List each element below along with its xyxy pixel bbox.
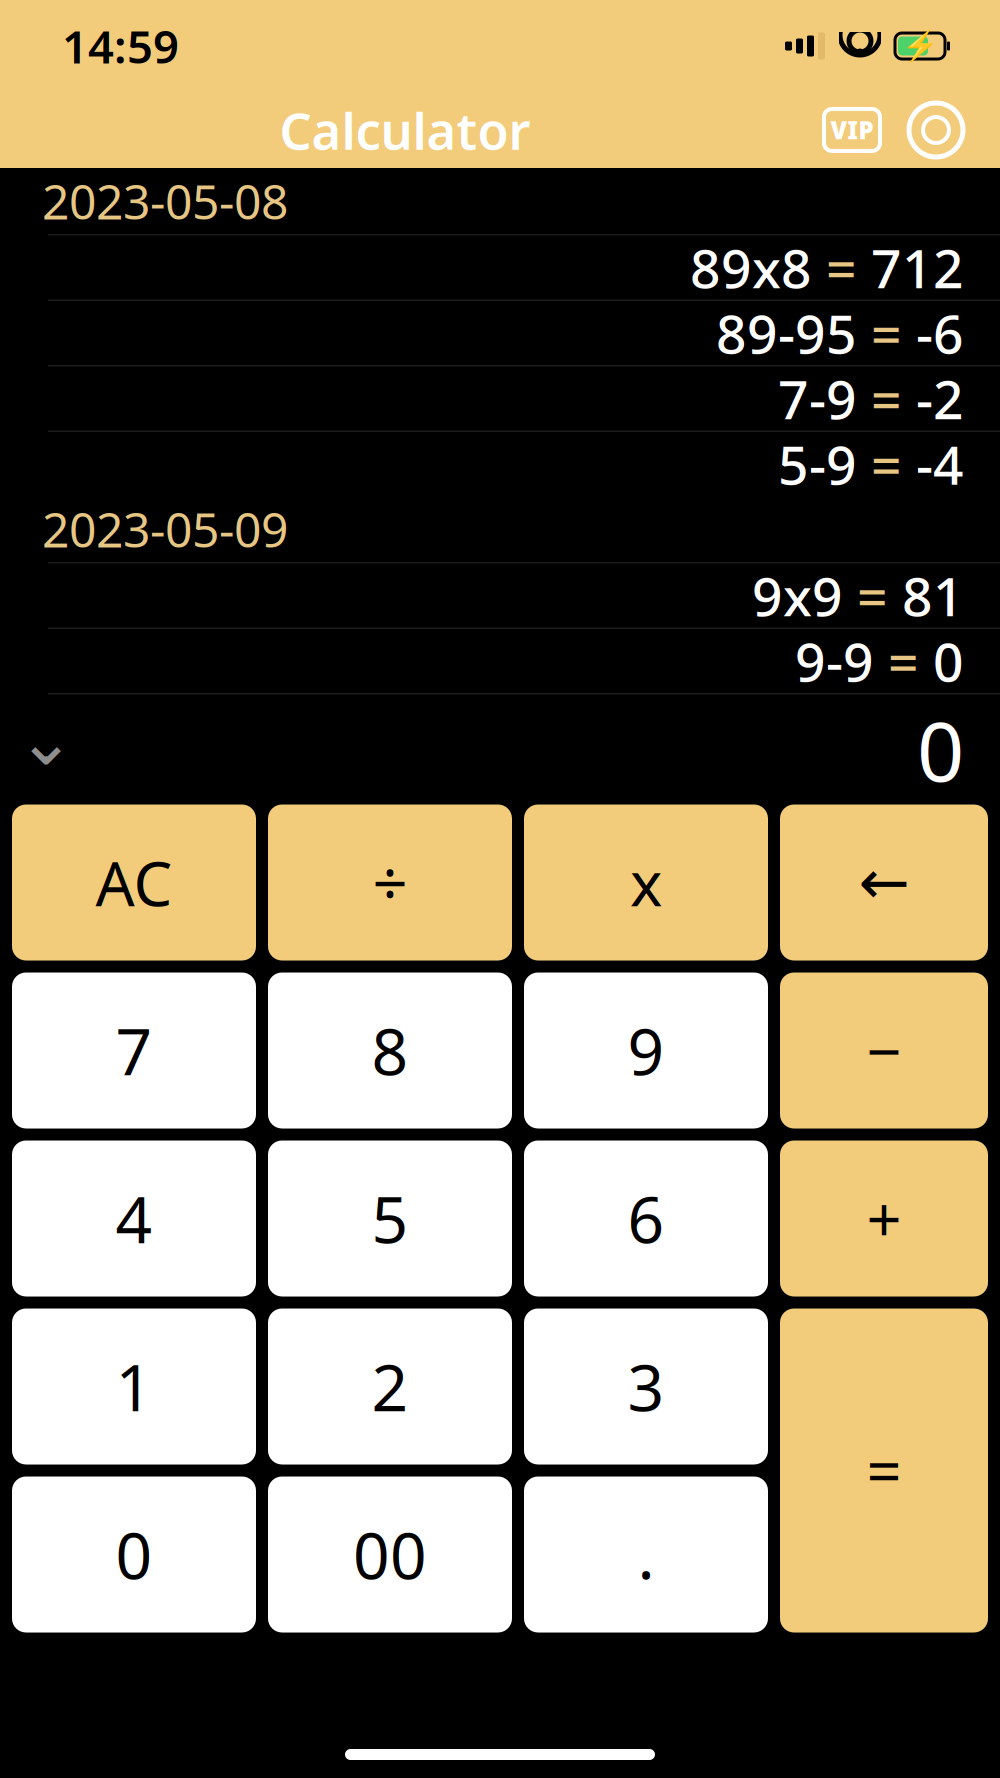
button[interactable]: ← [780, 804, 988, 960]
staticText: ÷ [372, 842, 407, 923]
staticText: 2 [371, 1344, 408, 1429]
staticText: 8 [371, 1008, 408, 1093]
button[interactable]: AC [12, 804, 256, 960]
staticText: 81 [902, 560, 964, 631]
button[interactable]: 7-9 [0, 365, 1000, 430]
staticText: = [874, 626, 933, 696]
staticText: VIP [830, 114, 873, 146]
button[interactable]: 5 [268, 1140, 512, 1296]
staticText: = [812, 232, 871, 303]
button[interactable]: 89x8 [0, 234, 1000, 299]
staticText: 9 [627, 1008, 664, 1093]
button[interactable]: 0 [12, 1476, 256, 1632]
button[interactable]: − [780, 972, 988, 1128]
staticText: = [843, 560, 902, 631]
staticText: − [866, 1010, 901, 1091]
staticText: 89x8 [690, 232, 812, 303]
staticText: = [857, 298, 916, 368]
staticText: 0 [933, 626, 964, 696]
button[interactable]: x [524, 804, 768, 960]
staticText: 9-9 [795, 626, 874, 696]
button[interactable]: 9-9 [0, 627, 1000, 693]
staticText: ⚡ [901, 29, 938, 63]
staticText: 9x9 [752, 560, 843, 631]
button[interactable]: 00 [268, 1476, 512, 1632]
staticText: 89-95 [716, 298, 857, 368]
button[interactable]: 2 [268, 1308, 512, 1464]
staticText: AC [95, 842, 172, 923]
button[interactable]: 9x9 [0, 562, 1000, 627]
staticText: 0 [115, 1512, 152, 1597]
staticText: = [857, 363, 916, 434]
staticText: 3 [627, 1344, 664, 1429]
button[interactable]: VIP [810, 98, 894, 162]
button[interactable]: ÷ [268, 804, 512, 960]
staticText: 14:59 [62, 16, 179, 76]
staticText: 2023-05-09 [42, 497, 288, 561]
button[interactable]: = [780, 1308, 988, 1632]
button[interactable]: 8 [268, 972, 512, 1128]
button[interactable]: 3 [524, 1308, 768, 1464]
button[interactable]: 7 [12, 972, 256, 1128]
staticText: x [630, 842, 662, 923]
staticText: -6 [916, 298, 964, 368]
staticText: ← [858, 848, 909, 917]
staticText: + [866, 1178, 901, 1259]
staticText: 6 [627, 1176, 664, 1261]
staticText: -2 [916, 363, 964, 434]
staticText: . [637, 1512, 654, 1597]
button[interactable]: 6 [524, 1140, 768, 1296]
button[interactable]: + [780, 1140, 988, 1296]
staticText: Calculator [279, 96, 530, 164]
staticText: 5 [371, 1176, 408, 1261]
staticText: 712 [871, 232, 964, 303]
staticText: -4 [916, 429, 964, 499]
button[interactable]: 89-95 [0, 299, 1000, 365]
button[interactable]: Settings [894, 98, 978, 162]
staticText: 4 [115, 1176, 152, 1261]
button[interactable]: 4 [12, 1140, 256, 1296]
staticText: = [857, 429, 916, 499]
staticText: 00 [353, 1512, 427, 1597]
button[interactable]: . [524, 1476, 768, 1632]
staticText: = [866, 1430, 901, 1511]
staticText: ⌄ [17, 701, 75, 780]
staticText: 5-9 [778, 429, 857, 499]
staticText: 2023-05-08 [42, 169, 288, 233]
button[interactable]: 1 [12, 1308, 256, 1464]
staticText: 7-9 [778, 363, 857, 434]
button[interactable]: Collapse history [0, 718, 92, 780]
button[interactable]: 9 [524, 972, 768, 1128]
staticText: 7 [115, 1008, 152, 1093]
staticText: 0 [917, 695, 964, 804]
button[interactable]: 5-9 [0, 430, 1000, 496]
staticText: 1 [115, 1344, 152, 1429]
